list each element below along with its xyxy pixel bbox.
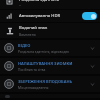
staticText: Посібник та сітка xyxy=(18,67,46,71)
button[interactable]: Автоматування HDR xyxy=(0,10,100,22)
staticText: ЗБЕРЕЖЕННЯ ВПОДОБАНЬ xyxy=(18,79,73,84)
button[interactable]: Expand xyxy=(88,80,97,89)
staticText: Автоматування HDR xyxy=(19,13,82,19)
staticText: ВІДЕО xyxy=(18,43,31,48)
button[interactable] xyxy=(0,94,100,98)
button[interactable]: НАЛАШТУВАННЯ ЗЙОМКИ xyxy=(0,58,100,74)
button[interactable]: Expand xyxy=(88,44,97,53)
button[interactable]: ВІДЕО xyxy=(0,40,100,56)
staticText: Роздільна здатність, відеокодек xyxy=(18,49,70,53)
button[interactable]: Expand xyxy=(88,62,97,71)
staticText: Роздільна здатність xyxy=(19,0,60,3)
staticText: Місцезнаходження xyxy=(18,85,49,89)
staticText: Вимкнено xyxy=(19,32,36,37)
button[interactable]: Водяний знак xyxy=(0,23,100,38)
staticText: НАЛАШТУВАННЯ ЗЙОМКИ xyxy=(18,61,73,66)
button[interactable]: HDR toggle on xyxy=(82,12,97,20)
button[interactable]: Роздільна здатність xyxy=(0,0,100,9)
staticText: Стандартна xyxy=(19,4,39,6)
button[interactable]: ЗБЕРЕЖЕННЯ ВПОДОБАНЬ xyxy=(0,76,100,92)
staticText: Водяний знак xyxy=(19,25,48,31)
